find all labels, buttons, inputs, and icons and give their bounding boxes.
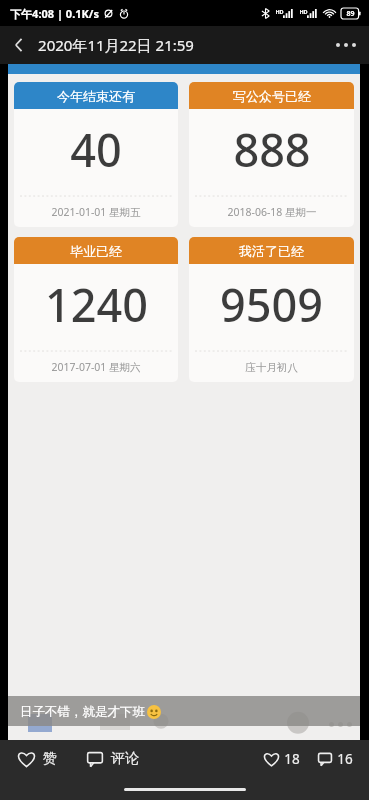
- staticText: 写公众号已经: [233, 88, 311, 104]
- staticText: 下午4:08 | 0.1K/s: [10, 6, 99, 21]
- button[interactable]: 今年结束还有: [14, 82, 178, 227]
- staticText: 888: [233, 119, 311, 180]
- staticText: HD: [275, 8, 284, 15]
- staticText: 1240: [45, 274, 148, 335]
- button[interactable]: 评论: [83, 746, 143, 772]
- staticText: 2020年11月22日 21:59: [38, 35, 194, 55]
- staticText: 毕业已经: [70, 243, 122, 259]
- button[interactable]: 赞: [14, 746, 61, 772]
- button[interactable]: 18: [260, 746, 304, 772]
- staticText: 日子不错，就是才下班: [18, 703, 147, 720]
- button[interactable]: 我活了已经: [189, 237, 354, 382]
- staticText: 18: [284, 750, 300, 768]
- staticText: HD: [299, 8, 308, 15]
- button[interactable]: Back: [0, 26, 38, 64]
- staticText: 庒十月初八: [245, 361, 298, 374]
- staticText: 9509: [220, 274, 323, 335]
- staticText: 16: [337, 750, 353, 768]
- button[interactable]: 毕业已经: [14, 237, 178, 382]
- staticText: 2021-01-01 星期五: [51, 205, 141, 219]
- staticText: 今年结束还有: [57, 88, 135, 104]
- button[interactable]: 16: [314, 746, 357, 772]
- button[interactable]: 写公众号已经: [189, 82, 354, 227]
- staticText: 赞: [43, 750, 57, 768]
- staticText: 89: [346, 9, 355, 19]
- staticText: 40: [70, 119, 122, 180]
- staticText: 2018-06-18 星期一: [227, 205, 317, 219]
- staticText: 评论: [111, 750, 139, 768]
- button[interactable]: 日子不错，就是才下班: [8, 696, 360, 726]
- button[interactable]: More options: [323, 26, 369, 64]
- staticText: 我活了已经: [239, 243, 304, 259]
- staticText: 2017-07-01 星期六: [51, 360, 141, 374]
